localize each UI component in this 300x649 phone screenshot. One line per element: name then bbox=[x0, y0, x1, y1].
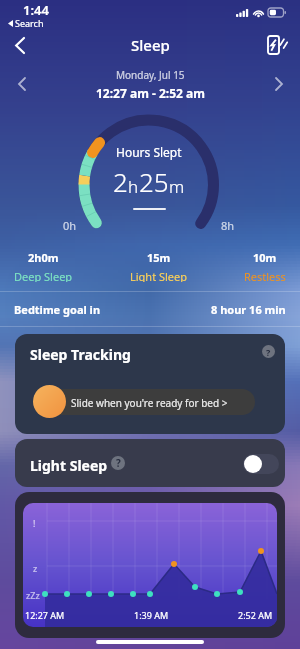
button[interactable]: Device settings bbox=[264, 31, 292, 59]
staticText: 0h bbox=[63, 218, 77, 233]
button[interactable]: Sleep Tracking bbox=[15, 334, 285, 434]
staticText: Light Sleep bbox=[130, 269, 188, 282]
staticText: 15m bbox=[147, 250, 171, 265]
button[interactable]: Light Sleep bbox=[15, 439, 285, 487]
staticText: 2:52 AM bbox=[238, 609, 273, 621]
staticText: Monday, Jul 15 bbox=[116, 68, 185, 82]
button[interactable]: Next day bbox=[264, 69, 294, 99]
staticText: 25 bbox=[139, 164, 169, 199]
button[interactable]: Help bbox=[111, 456, 125, 470]
staticText: h bbox=[128, 175, 139, 198]
staticText: Bedtime goal in bbox=[14, 302, 101, 317]
button[interactable]: Toggle light sleep bbox=[243, 454, 279, 474]
staticText: m bbox=[169, 175, 185, 198]
button[interactable]: Back bbox=[4, 30, 34, 60]
staticText: ! bbox=[33, 517, 36, 529]
staticText: 8h bbox=[221, 218, 235, 233]
staticText: Deep Sleep bbox=[14, 269, 73, 282]
staticText: 8 hour 16 min bbox=[211, 302, 286, 317]
button[interactable]: ! bbox=[15, 492, 285, 638]
staticText: 12:27 AM bbox=[25, 609, 65, 621]
staticText: 12:27 am - 2:52 am bbox=[96, 85, 205, 101]
staticText: Restless bbox=[244, 269, 286, 282]
staticText: ? bbox=[266, 346, 271, 358]
staticText: 10m bbox=[253, 250, 277, 265]
staticText: Sleep Tracking bbox=[30, 345, 131, 364]
staticText: 1:39 AM bbox=[134, 609, 169, 621]
staticText: Light Sleep bbox=[30, 456, 108, 475]
button[interactable]: Slide when you're ready for bed > bbox=[37, 389, 255, 415]
staticText: Slide when you're ready for bed > bbox=[71, 396, 228, 410]
staticText: ? bbox=[116, 456, 121, 470]
staticText: 2 bbox=[113, 164, 128, 199]
staticText: 2h0m bbox=[28, 250, 59, 265]
staticText: z bbox=[33, 562, 38, 574]
staticText: Hours Slept bbox=[116, 144, 182, 160]
button[interactable]: Help bbox=[262, 345, 275, 358]
staticText: zZz bbox=[26, 589, 40, 601]
staticText: 1:44 bbox=[23, 1, 49, 19]
button[interactable]: Previous day bbox=[6, 69, 36, 99]
staticText: Sleep bbox=[131, 35, 170, 55]
staticText: Search bbox=[15, 17, 44, 29]
